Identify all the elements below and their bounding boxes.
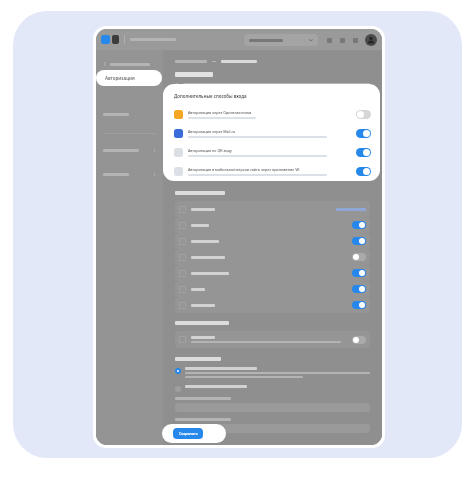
button[interactable]: Enabled xyxy=(352,237,366,245)
button[interactable]: Авторизация в мобильной версии сайта чер… xyxy=(174,162,371,181)
button[interactable]: Авторизация через Одноклассники xyxy=(174,105,371,124)
staticText: Авторизация в мобильной версии сайта чер… xyxy=(188,167,300,172)
button[interactable]: Enabled xyxy=(175,233,370,249)
button[interactable]: Enabled xyxy=(352,269,366,277)
button[interactable]: Disabled xyxy=(175,249,370,265)
staticText: Авторизация xyxy=(105,75,135,81)
button[interactable]: On xyxy=(356,148,371,157)
button[interactable] xyxy=(103,169,156,179)
button[interactable] xyxy=(175,367,370,378)
button[interactable] xyxy=(244,34,318,46)
staticText: Авторизация через Mail.ru xyxy=(188,129,236,134)
button[interactable]: Toolbar action xyxy=(324,35,334,45)
button[interactable]: Авторизация xyxy=(96,70,162,86)
button[interactable]: Enabled xyxy=(352,285,366,293)
button[interactable]: Авторизация по QR-коду xyxy=(174,143,371,162)
button[interactable]: Enabled xyxy=(175,297,370,313)
button[interactable]: VK ID logo xyxy=(101,35,110,44)
button[interactable] xyxy=(175,201,370,217)
button[interactable]: Сохранить xyxy=(173,428,203,439)
staticText: Авторизация по QR-коду xyxy=(188,148,232,153)
button[interactable]: Account xyxy=(365,34,377,46)
button[interactable]: Toolbar action xyxy=(337,35,347,45)
button[interactable]: Off xyxy=(356,110,371,119)
button[interactable] xyxy=(103,79,156,89)
button[interactable]: Авторизация через Mail.ru xyxy=(174,124,371,143)
staticText: Сохранить xyxy=(179,431,198,436)
button[interactable]: Enabled xyxy=(175,265,370,281)
button[interactable]: On xyxy=(356,129,371,138)
button[interactable]: Enabled xyxy=(175,217,370,233)
button[interactable]: Enabled xyxy=(352,301,366,309)
button[interactable]: Disabled xyxy=(352,336,366,344)
button[interactable]: Toolbar action xyxy=(350,35,360,45)
button[interactable] xyxy=(103,62,156,66)
button[interactable]: Disabled xyxy=(352,253,366,261)
button[interactable] xyxy=(103,145,156,155)
button[interactable] xyxy=(175,385,370,392)
button[interactable]: Enabled xyxy=(352,221,366,229)
button[interactable] xyxy=(103,109,156,119)
button[interactable]: Disabled xyxy=(175,331,370,348)
button[interactable]: On xyxy=(356,167,371,176)
staticText: Авторизация через Одноклассники xyxy=(188,110,252,115)
button[interactable]: Enabled xyxy=(175,281,370,297)
staticText: Дополнительные способы входа xyxy=(174,93,247,99)
